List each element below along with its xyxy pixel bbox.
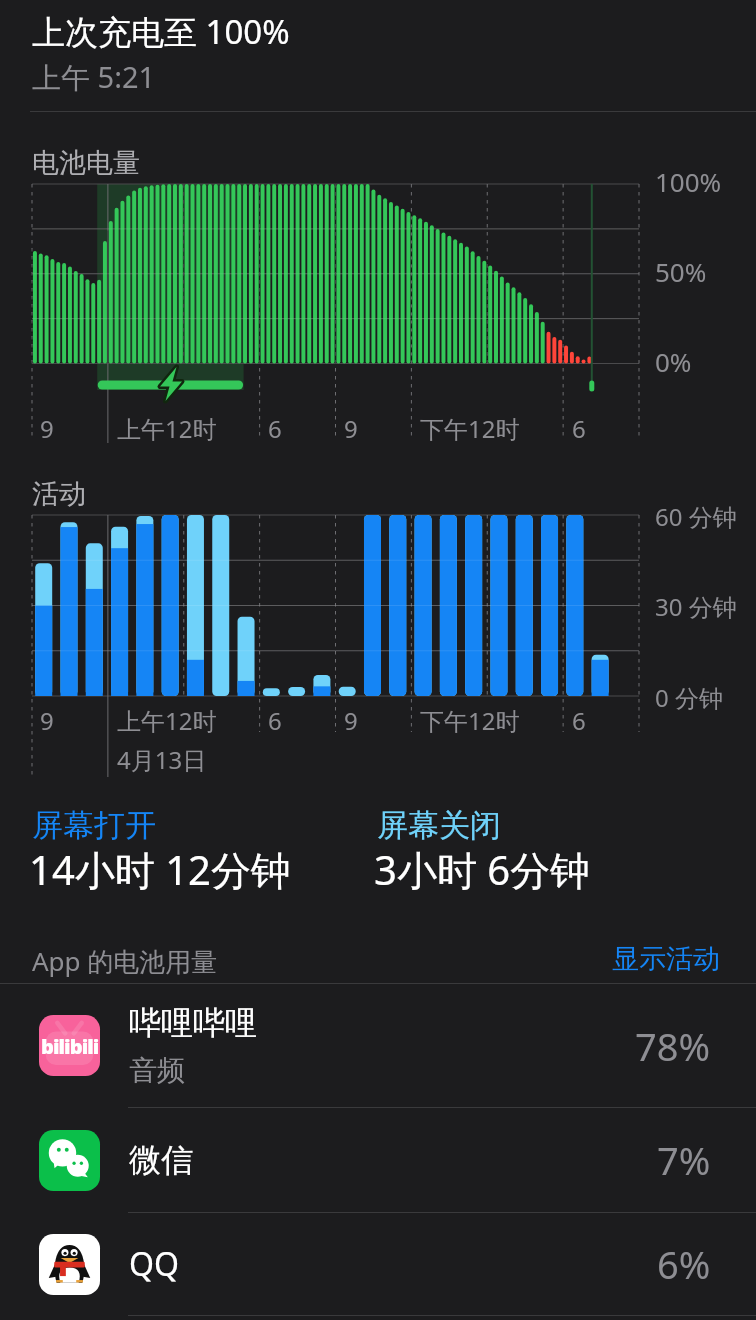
staticText: 3小时 6分钟 bbox=[374, 842, 591, 897]
staticText: bilibili bbox=[41, 1033, 99, 1060]
staticText: 30 分钟 bbox=[655, 590, 737, 623]
staticText: 0 分钟 bbox=[655, 681, 723, 714]
staticText: 50% bbox=[655, 254, 707, 289]
staticText: 14小时 12分钟 bbox=[29, 842, 291, 897]
staticText: 0% bbox=[655, 344, 692, 379]
staticText: 屏幕关闭 bbox=[377, 806, 501, 845]
staticText: 下午12时 bbox=[420, 412, 520, 445]
staticText: 9 bbox=[344, 704, 358, 737]
button[interactable]: bilibili bbox=[0, 984, 756, 1107]
staticText: 显示活动 bbox=[612, 942, 720, 976]
staticText: 4月13日 bbox=[117, 743, 207, 776]
staticText: 上午 5:21 bbox=[32, 57, 156, 97]
staticText: 100% bbox=[655, 164, 722, 199]
staticText: 哔哩哔哩 bbox=[129, 1003, 257, 1043]
staticText: 60 分钟 bbox=[655, 500, 737, 533]
staticText: 上午12时 bbox=[117, 704, 217, 737]
staticText: 6% bbox=[657, 1238, 711, 1290]
staticText: 6 bbox=[572, 412, 586, 445]
staticText: App 的电池用量 bbox=[32, 943, 218, 979]
staticText: 活动 bbox=[32, 477, 86, 511]
button[interactable]: QQ bbox=[0, 1213, 756, 1315]
staticText: 9 bbox=[40, 412, 54, 445]
staticText: 微信 bbox=[129, 1140, 193, 1180]
staticText: 9 bbox=[40, 704, 54, 737]
staticText: 7% bbox=[657, 1134, 711, 1186]
button[interactable]: 微信 bbox=[0, 1108, 756, 1212]
button[interactable]: 显示活动 bbox=[612, 942, 720, 976]
staticText: 6 bbox=[268, 704, 282, 737]
staticText: 音频 bbox=[129, 1053, 185, 1088]
staticText: 6 bbox=[268, 412, 282, 445]
staticText: 下午12时 bbox=[420, 704, 520, 737]
staticText: 78% bbox=[635, 1020, 711, 1072]
staticText: QQ bbox=[129, 1242, 179, 1286]
staticText: 上午12时 bbox=[117, 412, 217, 445]
staticText: 屏幕打开 bbox=[32, 806, 156, 845]
staticText: 6 bbox=[572, 704, 586, 737]
staticText: 9 bbox=[344, 412, 358, 445]
staticText: 上次充电至 100% bbox=[32, 9, 290, 54]
staticText: 电池电量 bbox=[32, 146, 140, 180]
